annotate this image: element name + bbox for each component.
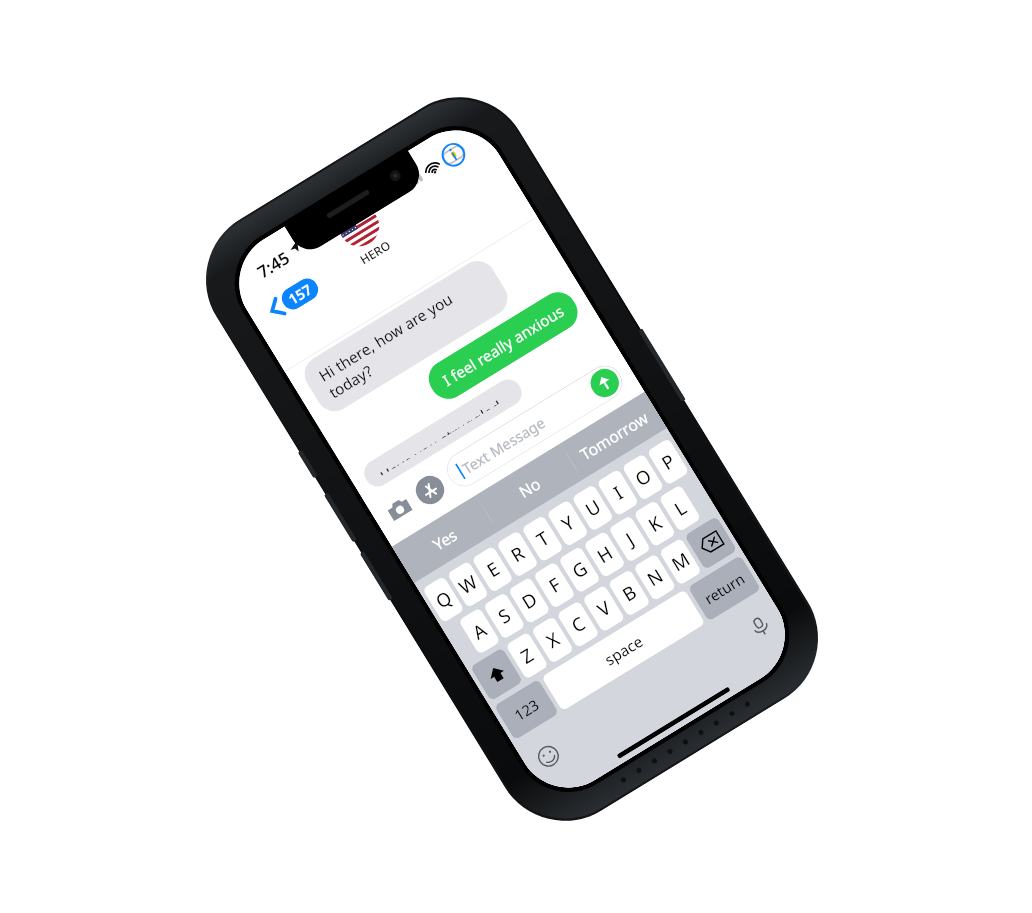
button[interactable]: J bbox=[608, 515, 651, 563]
staticText: Text Message bbox=[458, 412, 549, 478]
staticText: Q bbox=[431, 585, 456, 614]
button[interactable]: I bbox=[596, 469, 639, 516]
staticText: 7:45 bbox=[253, 246, 294, 283]
button[interactable]: L bbox=[658, 484, 701, 532]
staticText: E bbox=[482, 556, 504, 583]
button[interactable]: M bbox=[659, 538, 702, 586]
staticText: S bbox=[493, 602, 515, 629]
button[interactable]: App Store bbox=[411, 471, 450, 510]
button[interactable]: C bbox=[556, 600, 600, 648]
button[interactable]: Key bbox=[684, 516, 737, 570]
button[interactable]: P bbox=[647, 438, 689, 486]
staticText: W bbox=[454, 569, 482, 600]
button[interactable]: K bbox=[633, 500, 676, 547]
button[interactable]: O bbox=[621, 453, 664, 501]
button[interactable]: Hi there, how are you today? bbox=[298, 254, 514, 418]
button[interactable]: Emoji bbox=[530, 738, 566, 774]
staticText: Z bbox=[516, 642, 538, 669]
button[interactable]: Dictate bbox=[742, 608, 778, 644]
staticText: Y bbox=[557, 510, 579, 537]
button[interactable]: Yes bbox=[392, 495, 498, 583]
staticText: H bbox=[592, 540, 617, 569]
button[interactable]: X bbox=[531, 616, 574, 664]
staticText: X bbox=[541, 626, 564, 653]
button[interactable]: Send bbox=[585, 363, 624, 402]
staticText: V bbox=[592, 595, 615, 622]
staticText: 157 bbox=[284, 279, 315, 308]
staticText: U bbox=[580, 494, 605, 522]
staticText: I feel really anxious bbox=[439, 300, 568, 390]
button[interactable]: E bbox=[471, 545, 514, 593]
staticText: A bbox=[468, 617, 491, 645]
button[interactable]: S bbox=[483, 592, 526, 640]
button[interactable]: T bbox=[521, 515, 564, 563]
staticText: No bbox=[515, 473, 544, 502]
staticText: HERO bbox=[357, 237, 393, 268]
staticText: K bbox=[643, 510, 667, 537]
button[interactable]: G bbox=[558, 546, 601, 594]
staticText: 123 bbox=[510, 694, 543, 725]
staticText: Have you struggled with anxiety in the p… bbox=[376, 390, 510, 476]
staticText: M bbox=[667, 546, 694, 577]
button[interactable]: N bbox=[633, 553, 676, 601]
button[interactable]: Details bbox=[432, 134, 474, 176]
button[interactable]: return bbox=[688, 555, 761, 622]
staticText: O bbox=[630, 463, 656, 492]
staticText: J bbox=[621, 527, 639, 551]
staticText: D bbox=[517, 586, 542, 615]
button[interactable]: Have you struggled with anxiety in the p… bbox=[359, 374, 527, 491]
button[interactable]: 123 bbox=[494, 679, 559, 740]
staticText: Hi there, how are you today? bbox=[315, 269, 497, 403]
button[interactable]: A bbox=[458, 607, 501, 655]
staticText: return bbox=[701, 568, 749, 609]
button[interactable]: D bbox=[508, 577, 551, 624]
button[interactable]: V bbox=[582, 585, 625, 633]
button[interactable]: space bbox=[541, 589, 705, 711]
button[interactable]: Text Message bbox=[440, 359, 629, 493]
button[interactable]: Tomorrow bbox=[561, 392, 667, 480]
staticText: C bbox=[566, 610, 590, 638]
button[interactable]: H bbox=[583, 530, 626, 578]
button[interactable]: F bbox=[533, 561, 576, 609]
staticText: Yes bbox=[429, 524, 461, 555]
button[interactable]: No bbox=[476, 444, 582, 531]
staticText: P bbox=[657, 448, 679, 475]
staticText: B bbox=[618, 579, 641, 607]
button[interactable]: Key bbox=[470, 647, 523, 701]
button[interactable]: HERO bbox=[328, 195, 399, 273]
button[interactable]: Z bbox=[505, 632, 549, 680]
staticText: L bbox=[669, 495, 691, 521]
button[interactable]: W bbox=[447, 561, 489, 608]
button[interactable]: Camera bbox=[380, 489, 419, 528]
button[interactable]: Q bbox=[422, 576, 465, 623]
staticText: N bbox=[642, 563, 667, 592]
button[interactable]: 157 bbox=[261, 271, 326, 325]
staticText: space bbox=[600, 631, 646, 670]
staticText: R bbox=[506, 540, 529, 568]
button[interactable]: R bbox=[496, 530, 539, 578]
button[interactable]: Y bbox=[546, 499, 589, 547]
staticText: G bbox=[567, 555, 592, 584]
button[interactable]: I feel really anxious bbox=[422, 285, 584, 406]
staticText: T bbox=[532, 525, 553, 552]
staticText: F bbox=[544, 572, 565, 598]
button[interactable]: B bbox=[608, 569, 651, 617]
staticText: Tomorrow bbox=[576, 407, 652, 465]
staticText: I bbox=[609, 480, 627, 505]
button[interactable]: U bbox=[571, 484, 614, 532]
